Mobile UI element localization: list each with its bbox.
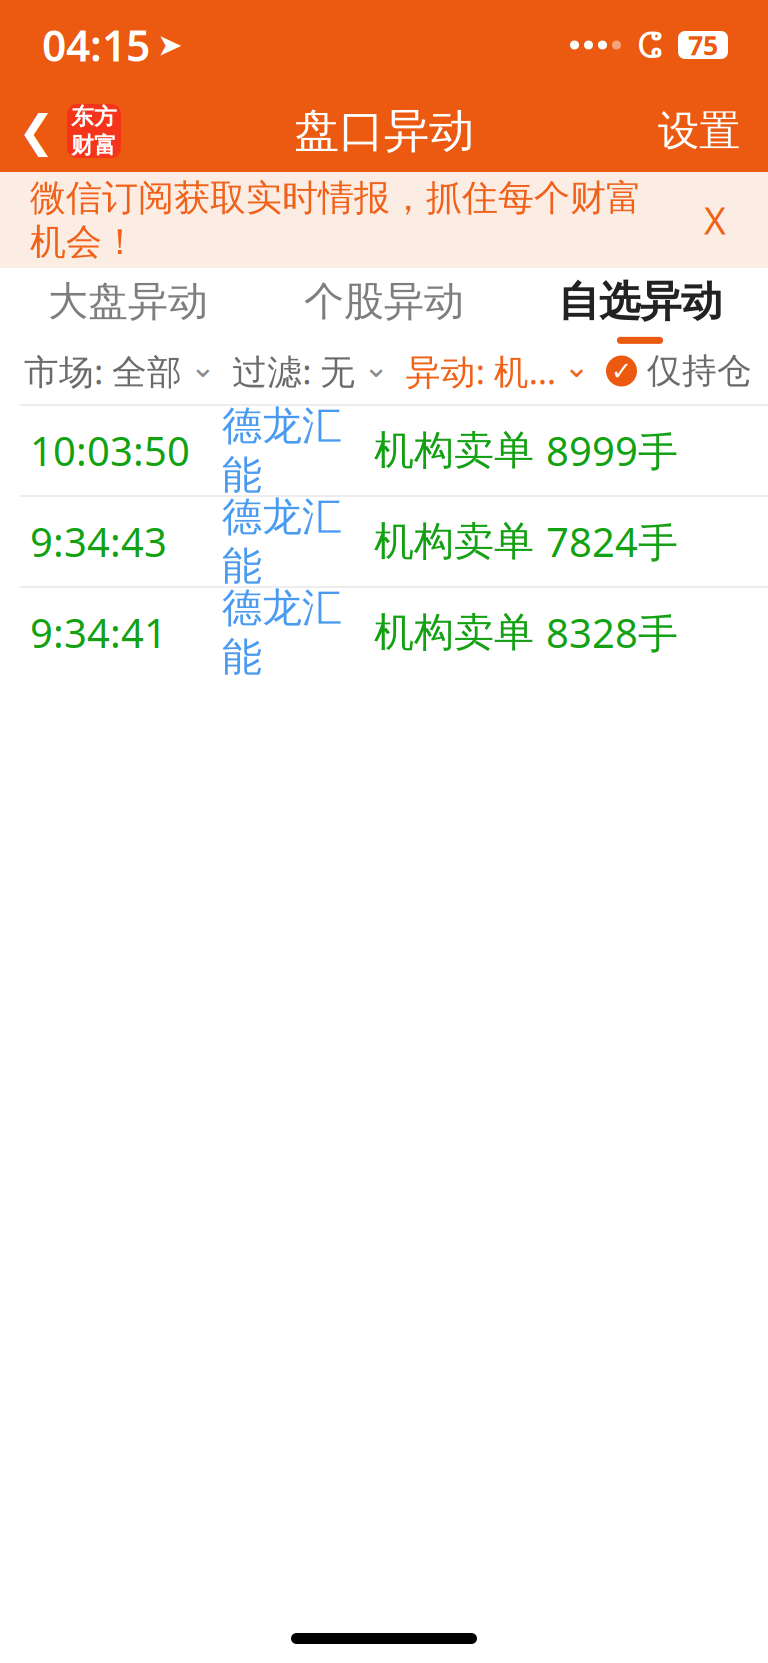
staticText: 仅持仓 bbox=[647, 350, 752, 392]
staticText: ❮ bbox=[18, 106, 55, 156]
button[interactable]: 自选异动 bbox=[512, 262, 768, 344]
staticText: 9:34:43 bbox=[30, 515, 167, 568]
staticText: 设置 bbox=[658, 106, 740, 156]
button[interactable]: 市场: 全部 bbox=[24, 342, 216, 400]
button[interactable]: 设置 bbox=[658, 94, 768, 168]
button[interactable]: 9:34:43 bbox=[0, 497, 768, 586]
staticText: 东方 bbox=[71, 103, 117, 130]
staticText: ➤ bbox=[157, 28, 183, 62]
staticText: ✓ bbox=[611, 357, 632, 385]
button[interactable]: 个股异动 bbox=[256, 263, 512, 343]
staticText: 机构卖单 bbox=[374, 608, 534, 657]
button[interactable]: 过滤: 无 bbox=[232, 342, 389, 400]
button[interactable]: 关闭 bbox=[684, 189, 746, 251]
staticText: 德龙汇能 bbox=[222, 583, 342, 682]
staticText: 机构卖单 bbox=[374, 426, 534, 475]
staticText: 个股异动 bbox=[304, 277, 464, 326]
staticText: 04:15 bbox=[42, 17, 150, 73]
button[interactable]: ✓ bbox=[606, 344, 752, 398]
staticText: 9:34:41 bbox=[30, 606, 167, 659]
staticText: 过滤: 无 bbox=[232, 348, 355, 394]
button[interactable]: 异动: 机… bbox=[406, 342, 590, 400]
staticText: 市场: 全部 bbox=[24, 348, 182, 394]
staticText: 8328手 bbox=[546, 606, 678, 659]
staticText: 德龙汇能 bbox=[222, 492, 342, 591]
button[interactable]: 大盘异动 bbox=[0, 263, 256, 343]
staticText: 自选异动 bbox=[558, 276, 722, 327]
staticText: X bbox=[704, 195, 726, 245]
staticText: 财富 bbox=[71, 131, 117, 159]
button[interactable]: 返回 bbox=[0, 98, 121, 164]
staticText: 7824手 bbox=[546, 515, 678, 568]
button[interactable]: 9:34:41 bbox=[0, 588, 768, 677]
staticText: 微信订阅获取实时情报，抓住每个财富机会！ bbox=[30, 176, 642, 264]
staticText: 盘口异动 bbox=[294, 103, 474, 159]
staticText: 机构卖单 bbox=[374, 517, 534, 566]
staticText: ⵛ bbox=[637, 25, 662, 65]
staticText: ⌄ bbox=[363, 349, 389, 384]
button[interactable]: 10:03:50 bbox=[0, 406, 768, 495]
staticText: 大盘异动 bbox=[48, 277, 208, 326]
staticText: 10:03:50 bbox=[30, 424, 190, 477]
staticText: 8999手 bbox=[546, 424, 678, 477]
staticText: ⌄ bbox=[190, 349, 216, 384]
staticText: 德龙汇能 bbox=[222, 401, 342, 500]
staticText: 异动: 机… bbox=[406, 348, 556, 394]
staticText: ⌄ bbox=[564, 349, 590, 384]
staticText: 75 bbox=[688, 27, 718, 63]
